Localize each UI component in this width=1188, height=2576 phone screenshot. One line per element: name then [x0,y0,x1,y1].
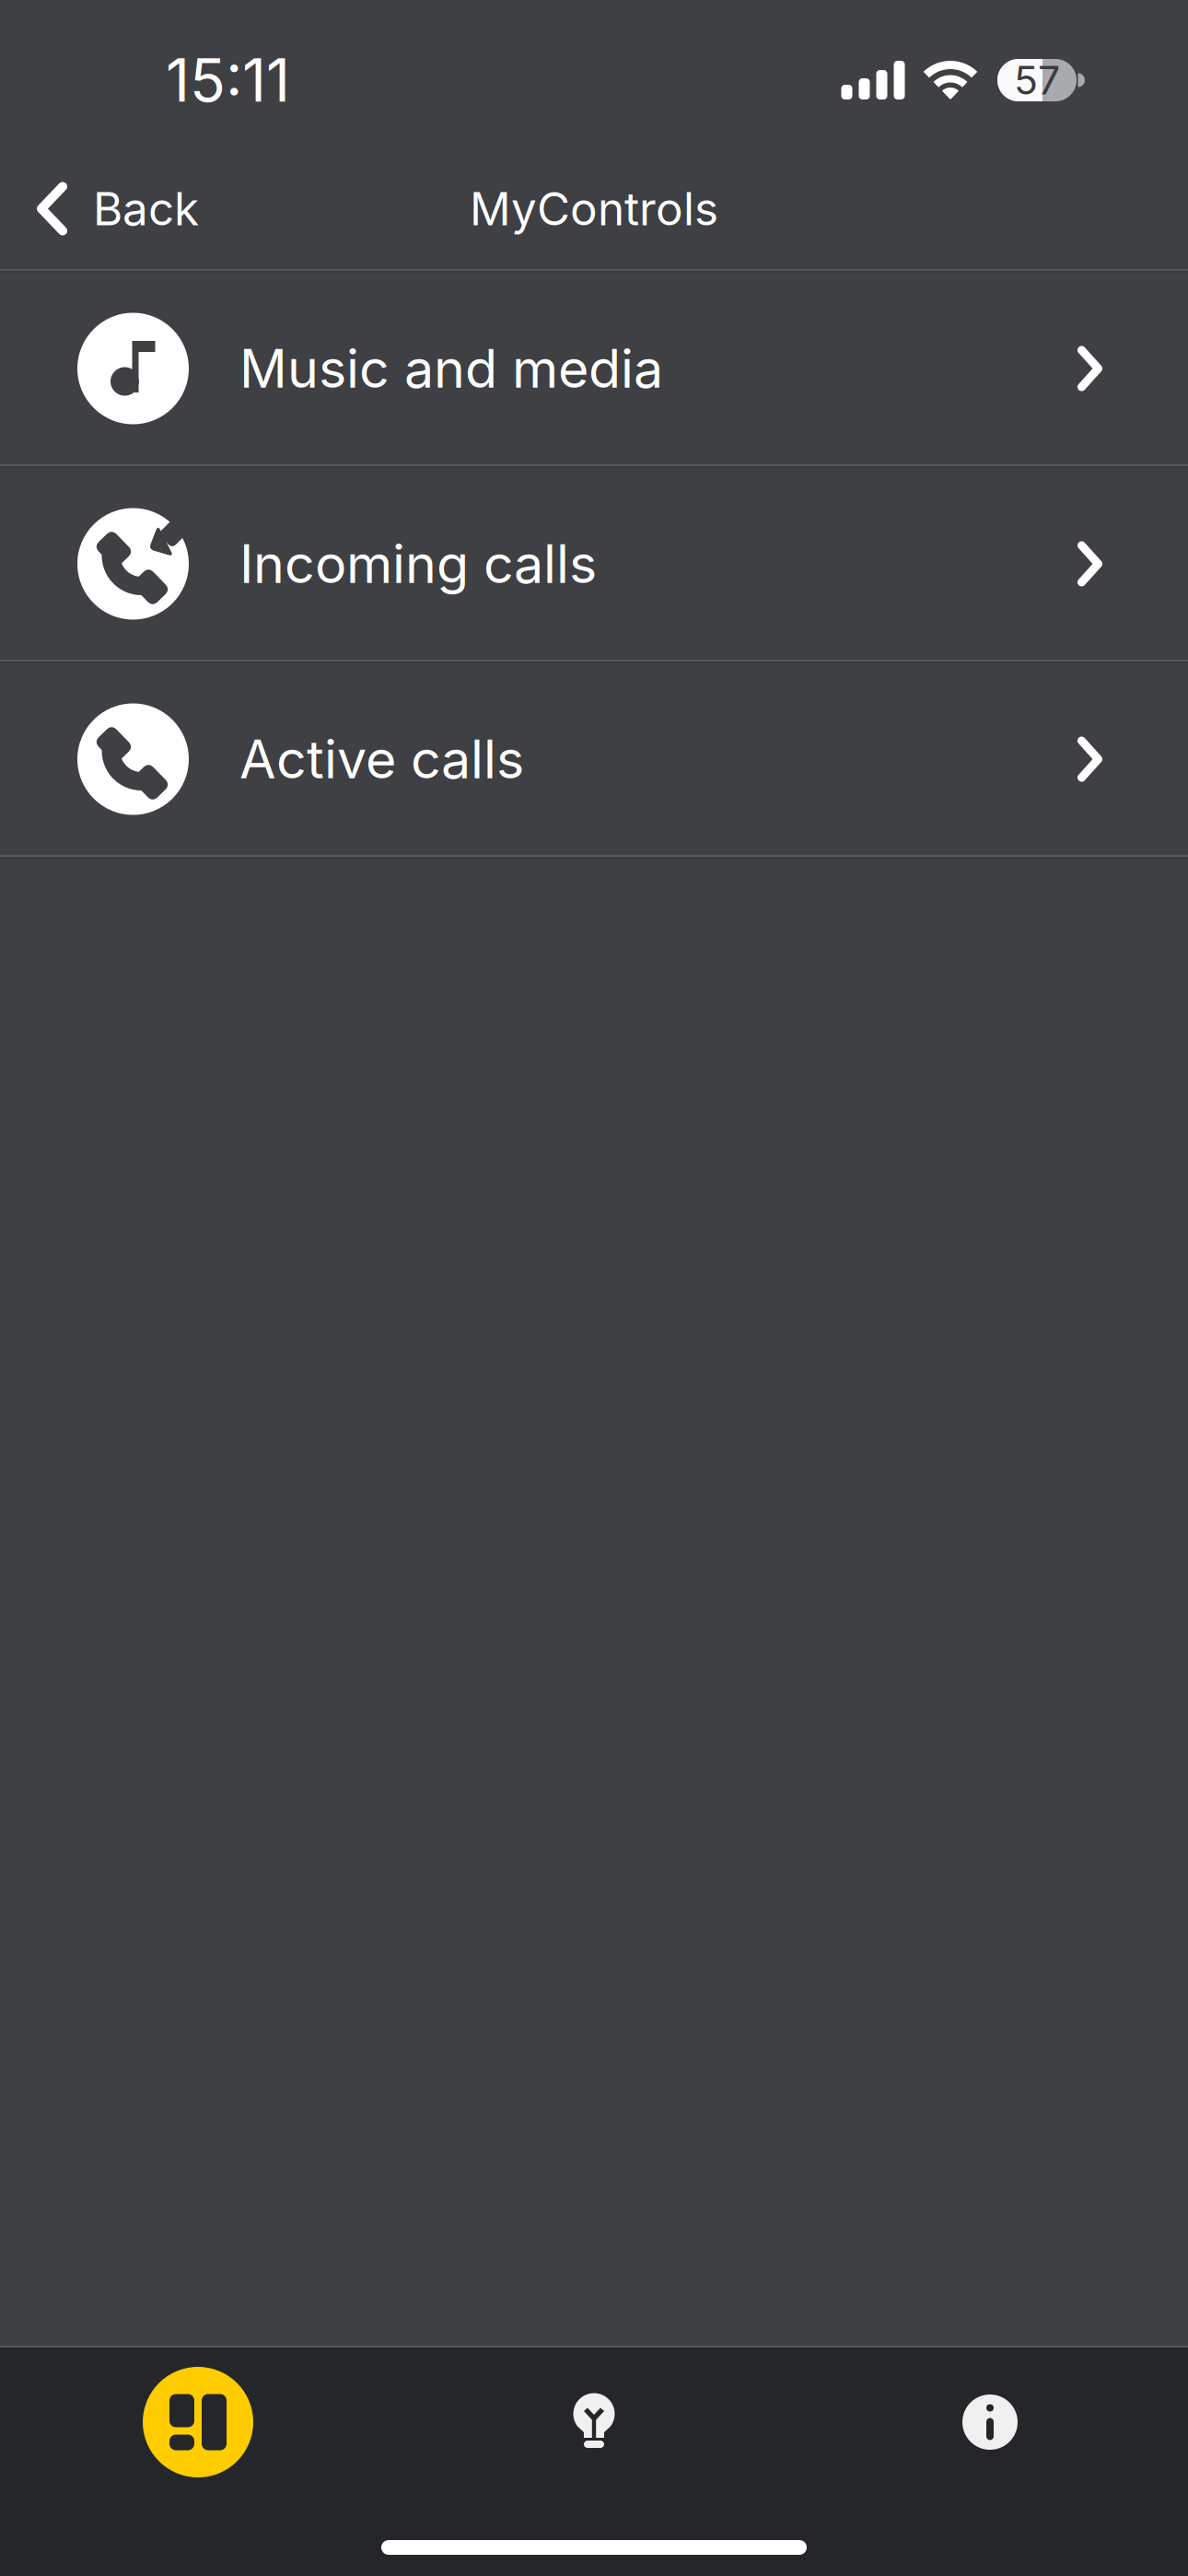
button[interactable]: Incoming calls [0,468,1188,663]
button[interactable]: Music and media [0,273,1188,468]
staticText: Incoming calls [239,532,597,596]
button[interactable]: Dashboard [0,2348,396,2497]
staticText: Back [93,181,199,236]
button[interactable]: Back [0,141,221,269]
button[interactable]: Tips [396,2348,792,2497]
staticText: Music and media [239,337,663,400]
button[interactable]: Active calls [0,663,1188,859]
staticText: 15:11 [166,44,290,116]
staticText: Active calls [239,727,524,791]
staticText: MyControls [470,181,718,236]
staticText: 57 [1014,56,1060,104]
button[interactable]: Info [792,2348,1188,2497]
